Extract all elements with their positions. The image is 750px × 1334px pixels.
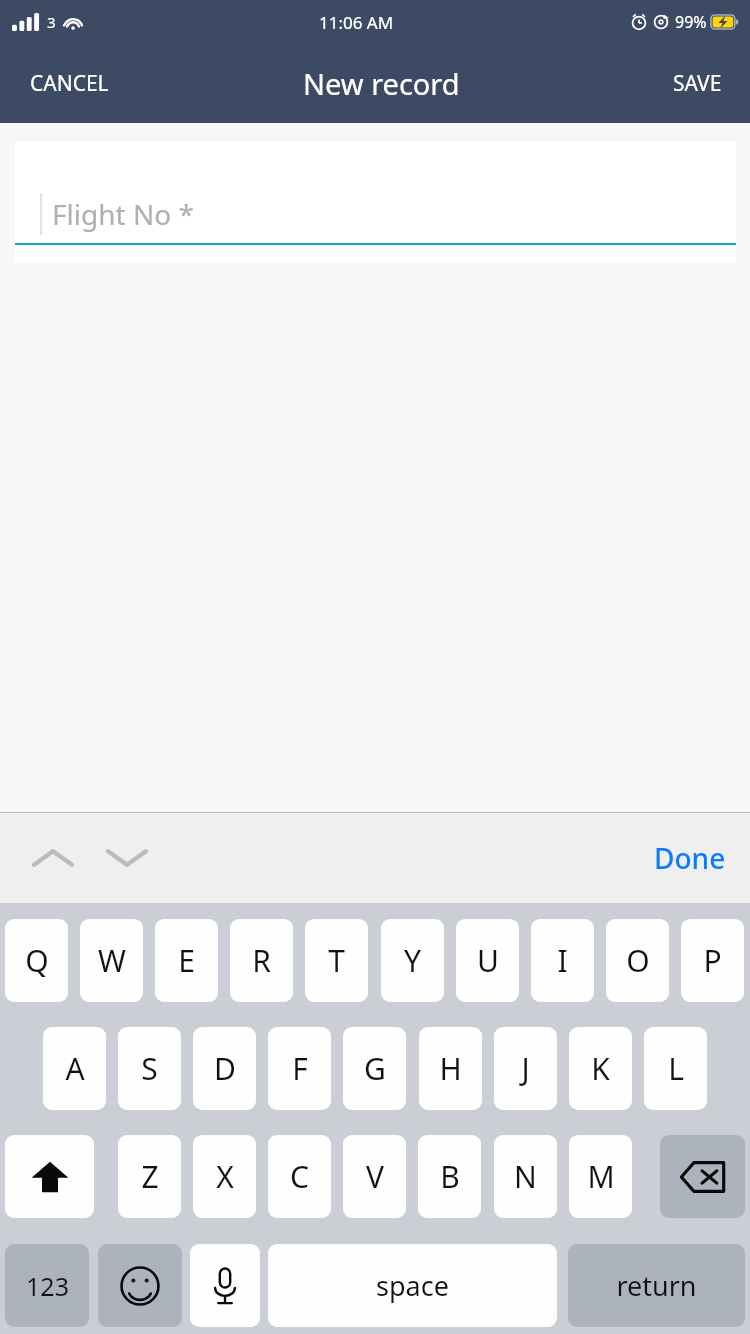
staticText: N [514, 1156, 537, 1197]
button[interactable]: Emoji [98, 1244, 182, 1327]
button[interactable]: CANCEL [0, 55, 139, 112]
button[interactable]: B [418, 1135, 481, 1218]
button[interactable]: Q [5, 919, 68, 1002]
staticText: Done [654, 839, 726, 877]
staticText: K [591, 1048, 610, 1089]
staticText: New record [303, 64, 460, 103]
staticText: Y [404, 940, 421, 981]
button[interactable]: V [343, 1135, 406, 1218]
staticText: O [626, 940, 650, 981]
button[interactable]: Next field [97, 812, 157, 903]
staticText: 99% [675, 11, 707, 33]
staticText: space [376, 1267, 449, 1304]
button[interactable]: M [569, 1135, 632, 1218]
staticText: A [65, 1048, 85, 1089]
staticText: J [521, 1048, 530, 1089]
staticText: X [216, 1156, 234, 1197]
button[interactable]: C [268, 1135, 331, 1218]
button[interactable]: S [118, 1027, 181, 1110]
button[interactable]: K [569, 1027, 632, 1110]
staticText: Flight No * [52, 195, 194, 233]
button[interactable]: Dictation [190, 1244, 260, 1327]
staticText: M [587, 1156, 615, 1197]
button[interactable]: H [419, 1027, 482, 1110]
button[interactable]: D [193, 1027, 256, 1110]
staticText: CANCEL [30, 69, 109, 98]
button[interactable]: R [230, 919, 293, 1002]
staticText: T [328, 940, 345, 981]
button[interactable]: G [343, 1027, 406, 1110]
staticText: Z [141, 1156, 159, 1197]
button[interactable]: F [268, 1027, 331, 1110]
button[interactable]: T [305, 919, 368, 1002]
button[interactable]: O [606, 919, 669, 1002]
button[interactable]: A [43, 1027, 106, 1110]
staticText: I [557, 940, 568, 981]
button[interactable]: Flight No * [15, 141, 736, 262]
button[interactable]: SAVE [645, 55, 750, 112]
button[interactable]: Previous field [23, 812, 83, 903]
button[interactable]: X [193, 1135, 256, 1218]
button[interactable]: 123 [5, 1244, 89, 1327]
staticText: V [366, 1156, 384, 1197]
button[interactable]: Done [630, 812, 750, 903]
staticText: F [292, 1048, 308, 1089]
button[interactable]: P [681, 919, 744, 1002]
staticText: Q [25, 940, 49, 981]
staticText: L [668, 1048, 684, 1089]
button[interactable]: N [494, 1135, 557, 1218]
button[interactable]: return [568, 1244, 745, 1327]
button[interactable]: Shift [5, 1135, 94, 1218]
staticText: S [141, 1048, 158, 1089]
staticText: G [364, 1048, 386, 1089]
staticText: 3 [47, 12, 56, 32]
button[interactable]: U [456, 919, 519, 1002]
staticText: return [616, 1267, 697, 1304]
button[interactable]: space [268, 1244, 557, 1327]
button[interactable]: Y [381, 919, 444, 1002]
staticText: D [214, 1048, 236, 1089]
staticText: 11:06 AM [319, 11, 394, 34]
staticText: W [98, 940, 126, 981]
staticText: P [703, 940, 722, 981]
staticText: 123 [26, 1269, 69, 1303]
button[interactable]: Z [118, 1135, 181, 1218]
button[interactable]: W [80, 919, 143, 1002]
button[interactable]: J [494, 1027, 557, 1110]
staticText: E [178, 940, 195, 981]
button[interactable]: I [531, 919, 594, 1002]
button[interactable]: L [644, 1027, 707, 1110]
staticText: R [252, 940, 271, 981]
staticText: B [440, 1156, 460, 1197]
button[interactable]: Backspace [660, 1135, 745, 1218]
staticText: C [290, 1156, 309, 1197]
staticText: U [477, 940, 499, 981]
staticText: SAVE [673, 69, 722, 98]
staticText: H [439, 1048, 462, 1089]
button[interactable]: E [155, 919, 218, 1002]
